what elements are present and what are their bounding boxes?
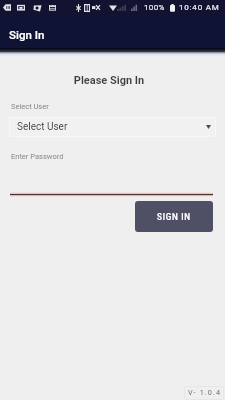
staticText: Please Sign In (0, 74, 218, 87)
staticText: Enter Password (11, 152, 64, 161)
staticText: Select User (11, 102, 49, 111)
staticText: Select User (17, 121, 68, 133)
staticText: SIGN IN (157, 212, 191, 222)
staticText: Sign In (9, 28, 45, 41)
button[interactable]: SIGN IN (135, 201, 213, 232)
staticText: 100% (144, 3, 165, 12)
staticText: V- 1.0.4 (188, 388, 222, 397)
button[interactable]: Select User (9, 117, 216, 137)
staticText: 10:40 AM (179, 3, 220, 12)
